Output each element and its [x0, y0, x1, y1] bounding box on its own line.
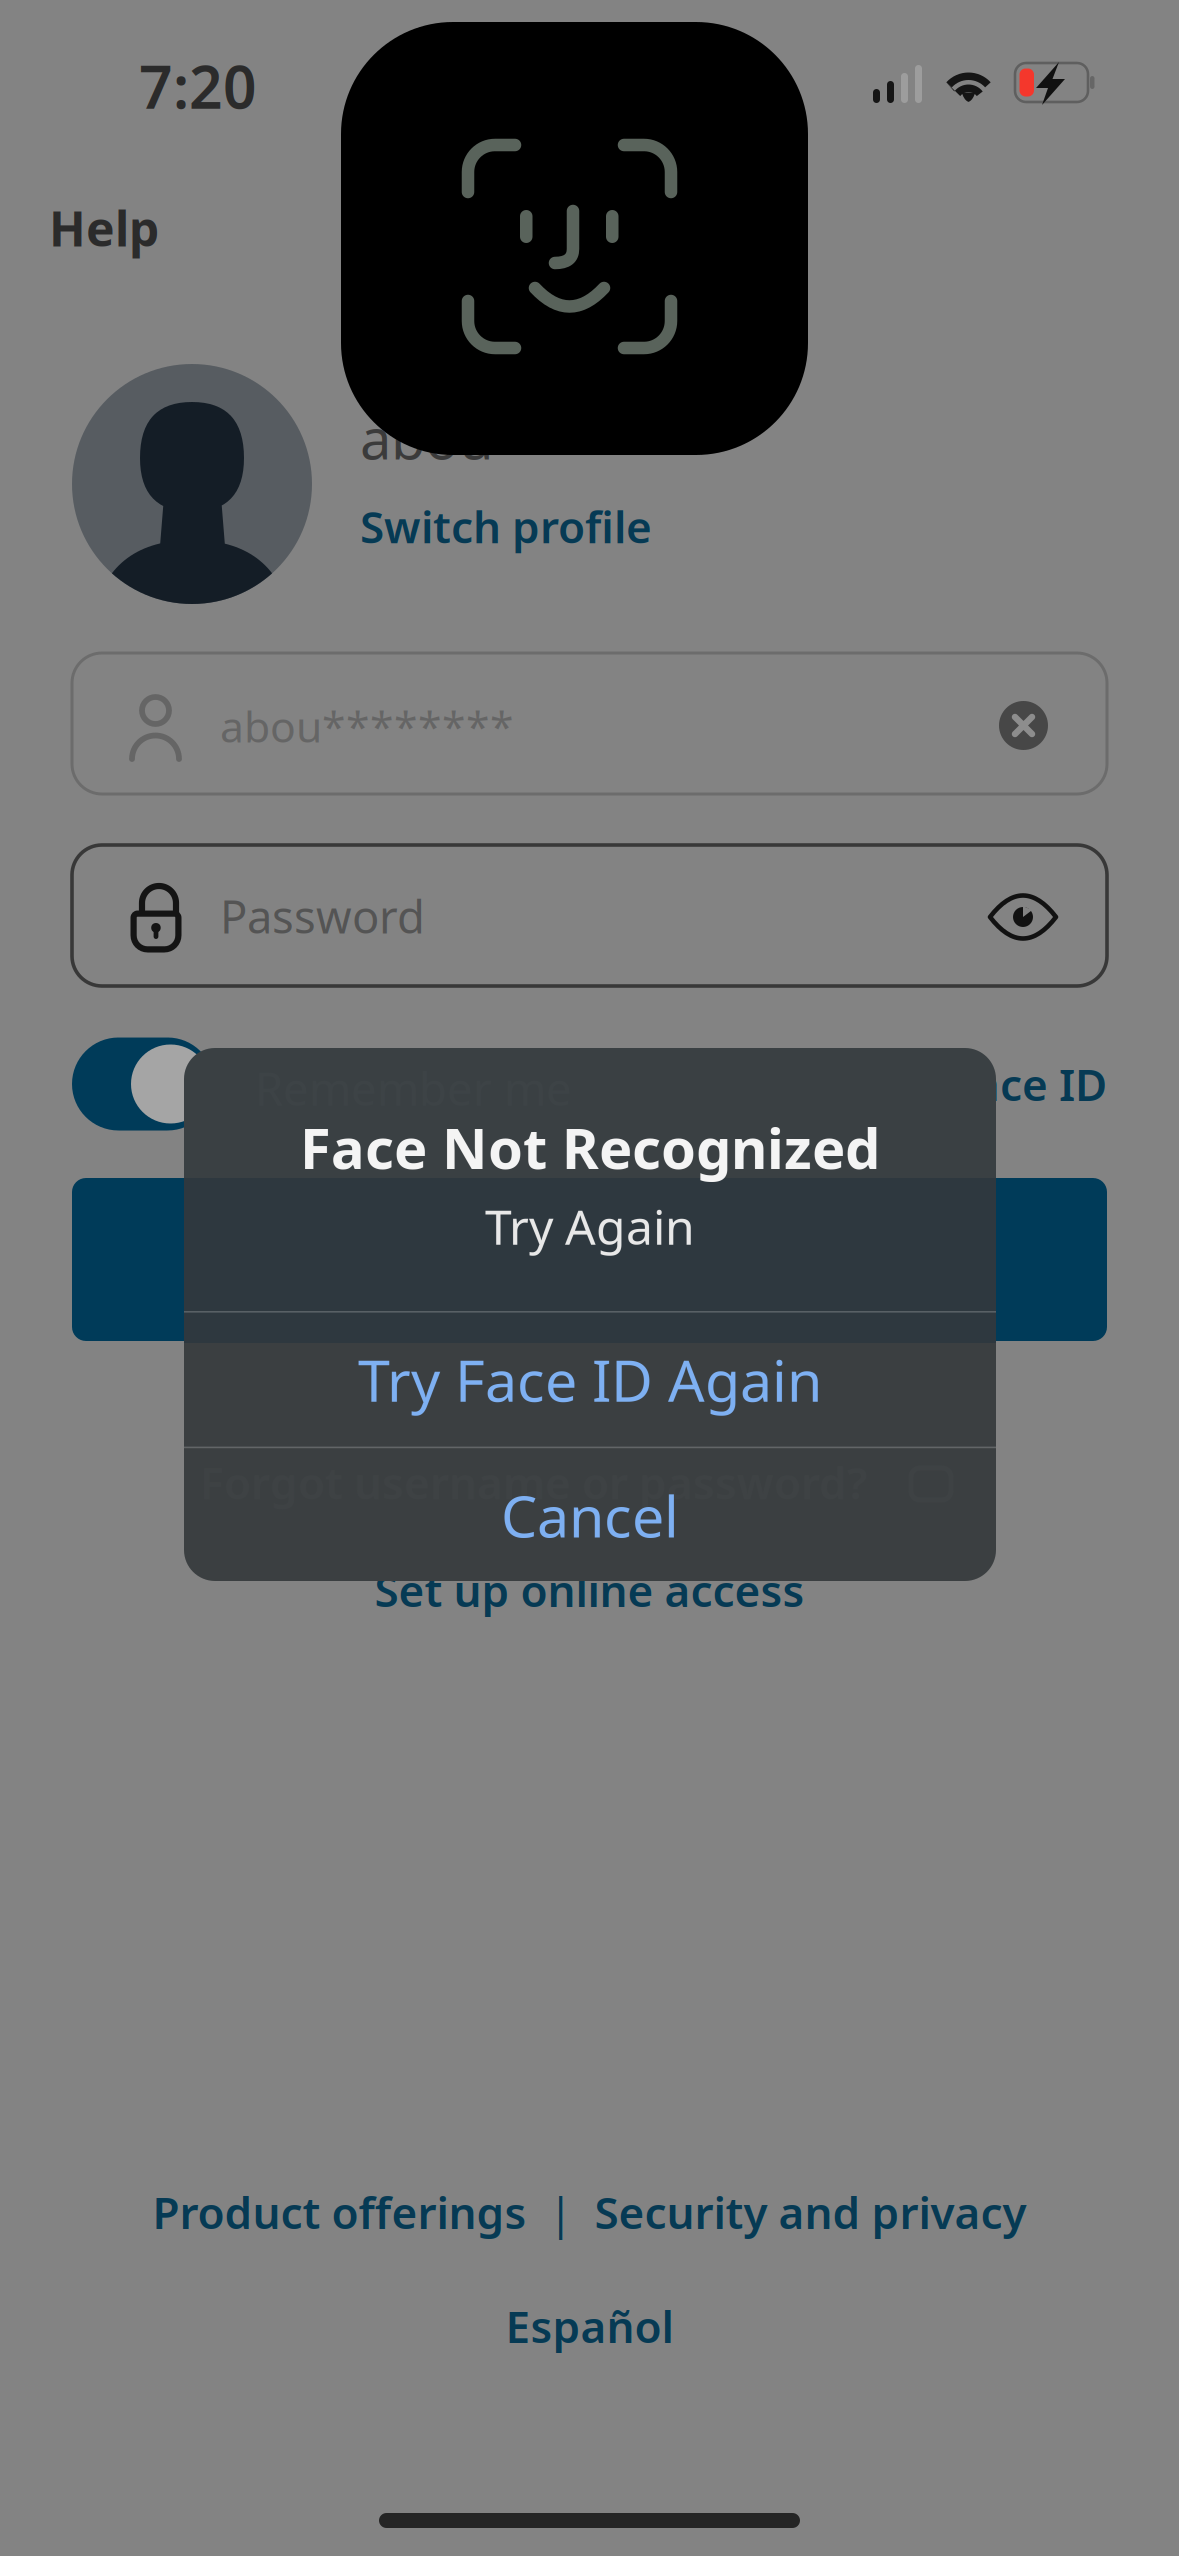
button[interactable]: Security and privacy — [594, 2182, 1026, 2242]
staticText: Password — [220, 886, 425, 946]
button[interactable]: Forgot username or password? — [72, 1425, 1107, 1515]
staticText: 7:20 — [139, 47, 257, 125]
staticText: abou******** — [220, 698, 514, 754]
staticText: Set up online access — [374, 1561, 804, 1619]
button[interactable]: Cancel — [184, 1448, 996, 1582]
button[interactable]: Face ID — [867, 1036, 1107, 1132]
staticText: Sign in — [513, 1229, 665, 1290]
staticText: Cancel — [501, 1477, 679, 1553]
button[interactable]: abou — [360, 408, 840, 548]
staticText: Security and privacy — [594, 2183, 1026, 2241]
staticText: abou — [360, 401, 494, 475]
button[interactable]: Remember me — [72, 1036, 652, 1132]
staticText: Face Not Recognized — [300, 1110, 880, 1184]
button[interactable]: Try Face ID Again — [184, 1313, 996, 1447]
button[interactable]: Set up online access — [72, 1545, 1107, 1635]
staticText: Face ID — [950, 1055, 1107, 1113]
staticText: Product offerings — [152, 2183, 526, 2241]
button[interactable]: Sign in — [72, 1178, 1107, 1341]
staticText: Forgot username or password? — [215, 1441, 882, 1499]
button[interactable]: Password — [72, 845, 1107, 986]
staticText: | — [526, 2183, 594, 2241]
staticText: Try Face ID Again — [358, 1341, 822, 1418]
staticText: Español — [505, 2297, 673, 2355]
button[interactable]: abou******** — [72, 653, 1107, 794]
button[interactable]: Product offerings — [152, 2182, 526, 2242]
button[interactable]: Español — [505, 2296, 673, 2356]
staticText: Help — [49, 196, 159, 260]
staticText: Switch profile — [360, 497, 652, 555]
staticText: Try Again — [485, 1194, 695, 1258]
button[interactable]: Help — [49, 198, 179, 258]
staticText: Forgot username or password? — [200, 1453, 867, 1511]
